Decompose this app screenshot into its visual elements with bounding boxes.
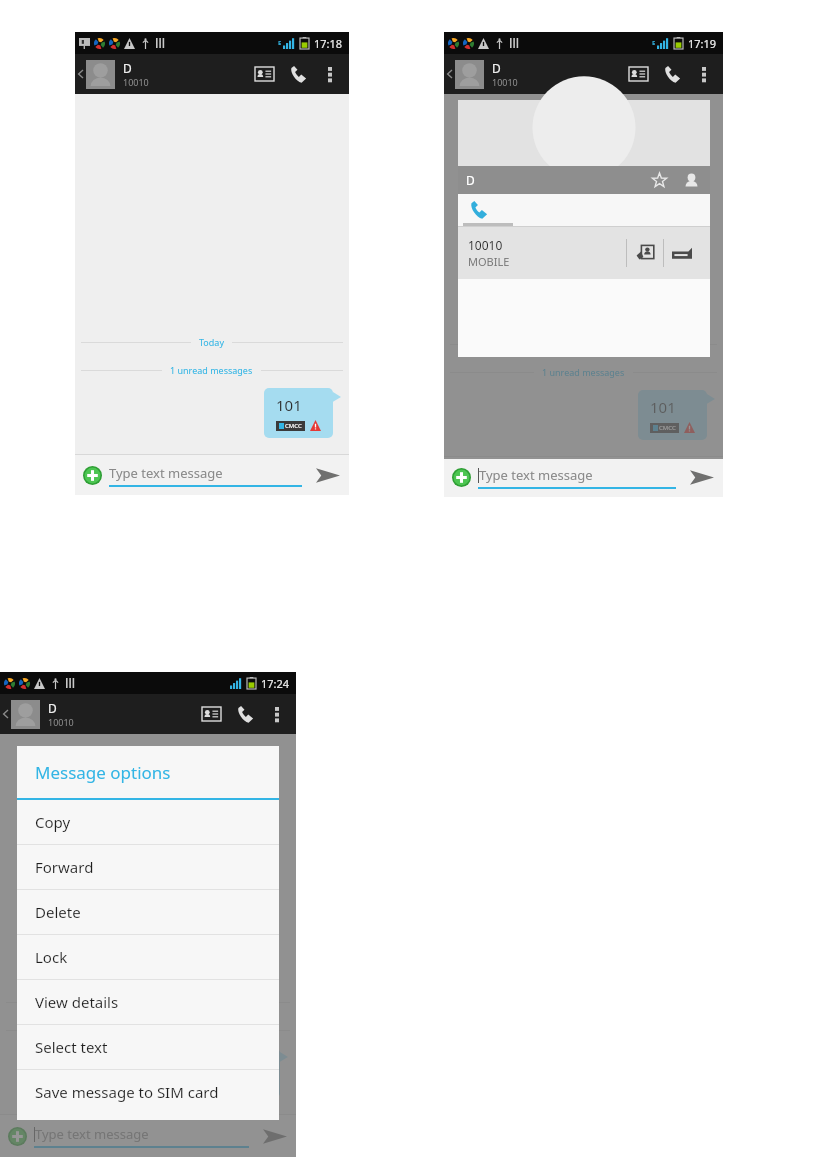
button[interactable]: Send <box>258 1119 292 1153</box>
button[interactable]: Contact <box>680 169 702 191</box>
button[interactable]: Contact details <box>194 697 228 731</box>
staticText: D <box>466 172 475 188</box>
staticText: Type text message <box>109 464 223 482</box>
staticText: 101 <box>276 395 302 415</box>
button[interactable]: Call tab <box>467 198 491 222</box>
button[interactable]: More options <box>262 699 292 729</box>
button[interactable]: More options <box>315 59 345 89</box>
button[interactable]: Delete <box>17 890 279 934</box>
button[interactable]: Send <box>311 458 345 492</box>
button[interactable]: More options <box>689 59 719 89</box>
staticText: Forward <box>35 857 94 877</box>
button[interactable]: Save message to SIM card <box>17 1070 279 1114</box>
button[interactable]: Copy <box>17 800 279 844</box>
staticText: Save message to SIM card <box>35 1082 219 1102</box>
staticText: MOBILE <box>468 254 510 269</box>
staticText: 10010 <box>492 76 518 88</box>
button[interactable]: Forward <box>17 845 279 889</box>
staticText: Lock <box>35 947 68 967</box>
staticText: 101 <box>223 1055 249 1075</box>
button[interactable]: Add to contacts <box>627 235 663 271</box>
staticText: 1 unread messages <box>170 364 253 376</box>
staticText: 101 <box>650 397 676 417</box>
staticText: 1 unread messages <box>542 366 625 378</box>
button[interactable]: 10010 <box>458 227 710 279</box>
staticText: CMCC <box>285 422 302 430</box>
button[interactable]: Attach <box>450 466 472 488</box>
button[interactable]: Lock <box>17 935 279 979</box>
staticText: 1 unread messages <box>106 1024 189 1036</box>
button[interactable]: Send <box>685 460 719 494</box>
staticText: View details <box>35 992 119 1012</box>
button[interactable]: Contact details <box>247 57 281 91</box>
staticText: D <box>492 60 501 76</box>
staticText: E <box>278 39 282 47</box>
button[interactable]: View details <box>17 980 279 1024</box>
staticText: CMCC <box>659 424 676 432</box>
button[interactable]: Type text message <box>34 1115 249 1157</box>
staticText: E <box>652 39 656 47</box>
staticText: Today <box>199 336 224 348</box>
button[interactable]: Select text <box>17 1025 279 1069</box>
staticText: 10010 <box>123 76 149 88</box>
staticText: 10010 <box>468 237 503 253</box>
button[interactable]: Send message <box>664 235 700 271</box>
button[interactable]: Call <box>655 57 689 91</box>
staticText: 17:18 <box>314 36 343 51</box>
button[interactable]: Type text message <box>109 455 302 495</box>
button[interactable]: Contact details <box>621 57 655 91</box>
staticText: Message options <box>35 761 171 784</box>
staticText: D <box>48 700 57 716</box>
button[interactable]: Type text message <box>478 457 676 497</box>
staticText: Type text message <box>35 1125 149 1143</box>
button[interactable]: Call <box>281 57 315 91</box>
staticText: Copy <box>35 812 71 832</box>
button[interactable]: Attach <box>81 464 103 486</box>
button[interactable]: Call <box>228 697 262 731</box>
button[interactable]: Favorite <box>648 169 670 191</box>
staticText: 17:24 <box>261 676 290 691</box>
staticText: D <box>123 60 132 76</box>
button[interactable]: Attach <box>6 1125 28 1147</box>
staticText: Type text message <box>479 466 593 484</box>
staticText: 17:19 <box>688 36 717 51</box>
staticText: 10010 <box>48 716 74 728</box>
staticText: Delete <box>35 902 81 922</box>
staticText: Select text <box>35 1037 108 1057</box>
